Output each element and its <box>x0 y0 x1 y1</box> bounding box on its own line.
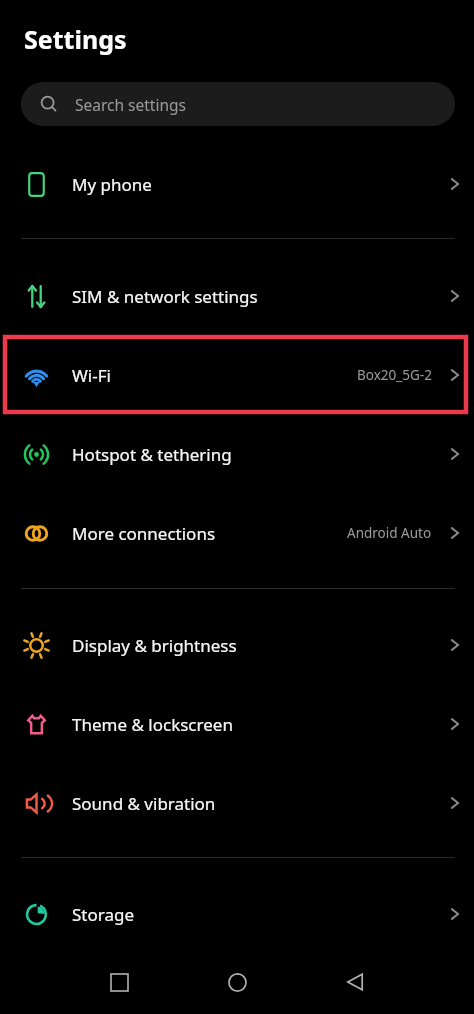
button[interactable]: Display & brightness <box>0 615 474 675</box>
button[interactable]: Theme & lockscreen <box>0 694 474 754</box>
staticText: Hotspot & tethering <box>72 443 232 466</box>
staticText: Settings <box>24 22 127 56</box>
staticText: Wi-Fi <box>72 364 111 387</box>
button[interactable]: Back <box>331 958 379 1006</box>
staticText: Display & brightness <box>72 634 237 657</box>
staticText: More connections <box>72 522 216 545</box>
staticText: Box20_5G-2 <box>357 366 432 384</box>
button[interactable]: My phone <box>0 154 474 214</box>
staticText: My phone <box>72 173 152 196</box>
button[interactable]: SIM & network settings <box>0 266 474 326</box>
button[interactable]: Home <box>213 958 261 1006</box>
button[interactable]: Hotspot & tethering <box>0 424 474 484</box>
button[interactable]: More connections <box>0 503 474 563</box>
staticText: Theme & lockscreen <box>72 713 233 736</box>
button[interactable]: Wi-Fi <box>0 345 474 405</box>
button[interactable]: Search settings <box>21 82 455 126</box>
staticText: Search settings <box>75 94 186 115</box>
staticText: SIM & network settings <box>72 285 258 308</box>
button[interactable]: Storage <box>0 884 474 944</box>
staticText: Storage <box>72 903 135 926</box>
staticText: Sound & vibration <box>72 792 216 815</box>
button[interactable]: Sound & vibration <box>0 773 474 833</box>
button[interactable]: Recent apps <box>95 958 143 1006</box>
staticText: Android Auto <box>347 524 432 542</box>
